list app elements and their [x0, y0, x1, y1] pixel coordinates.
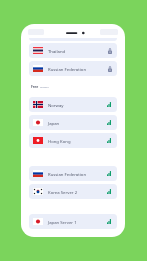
staticText: Korea Server 2 [48, 189, 78, 195]
button[interactable]: Hong Kong [29, 133, 117, 148]
other: Premium locked [108, 66, 112, 72]
button[interactable]: Japan [29, 115, 117, 130]
button[interactable]: Russian Federation [29, 61, 117, 76]
staticText: Japan Server 1 [48, 219, 77, 225]
other: Premium locked [108, 48, 112, 54]
other: Signal strength [107, 138, 111, 143]
staticText: Norway [48, 102, 64, 108]
staticText: Russian Federation [48, 171, 87, 177]
staticText: Hong Kong [48, 138, 71, 144]
button[interactable]: Russian Federation [29, 166, 117, 181]
other: Signal strength [107, 189, 111, 194]
staticText: Free [31, 84, 39, 89]
button[interactable]: Korea Server 2 [29, 184, 117, 199]
staticText: Russian Federation [48, 66, 87, 72]
button[interactable]: Norway [29, 97, 117, 112]
staticText: Japan [48, 120, 60, 126]
button[interactable]: Japan Server 1 [29, 214, 117, 229]
button[interactable]: Thailand [29, 43, 117, 58]
other: Signal strength [107, 120, 111, 125]
staticText: Thailand [48, 48, 66, 54]
other: Signal strength [107, 219, 111, 224]
other: Signal strength [107, 102, 111, 107]
other: Signal strength [107, 171, 111, 176]
staticText: Servers [40, 85, 49, 88]
